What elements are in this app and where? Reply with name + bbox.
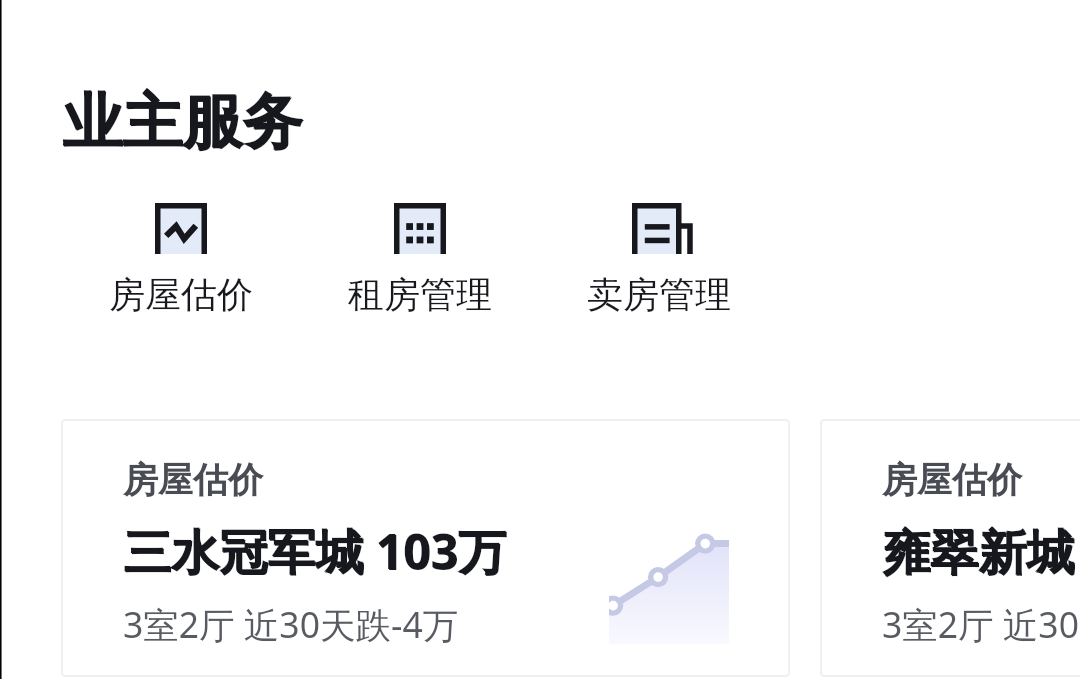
- staticText: 业主服务: [63, 85, 303, 161]
- staticText: 三水冠军城 103万: [123, 518, 506, 584]
- staticText: 雍翠新城 88万: [882, 518, 1080, 584]
- button[interactable]: 房屋估价: [61, 203, 300, 317]
- staticText: 3室2厅 近30天跌-2万: [882, 600, 1080, 648]
- staticText: 三水冠军城 103万: [124, 519, 507, 585]
- button[interactable]: 租房管理: [300, 203, 539, 317]
- button[interactable]: 房屋估价: [61, 419, 790, 677]
- staticText: 房屋估价: [882, 458, 1022, 502]
- button[interactable]: 房屋估价: [820, 419, 1080, 677]
- staticText: 业主服务: [62, 84, 302, 160]
- staticText: 3室2厅 近30天跌-4万: [123, 600, 459, 648]
- staticText: 卖房管理: [587, 272, 731, 317]
- staticText: 租房管理: [348, 272, 492, 317]
- staticText: 房屋估价: [109, 272, 253, 317]
- button[interactable]: 卖房管理: [539, 203, 778, 317]
- staticText: 雍翠新城 88万: [883, 519, 1080, 585]
- staticText: 房屋估价: [123, 458, 263, 502]
